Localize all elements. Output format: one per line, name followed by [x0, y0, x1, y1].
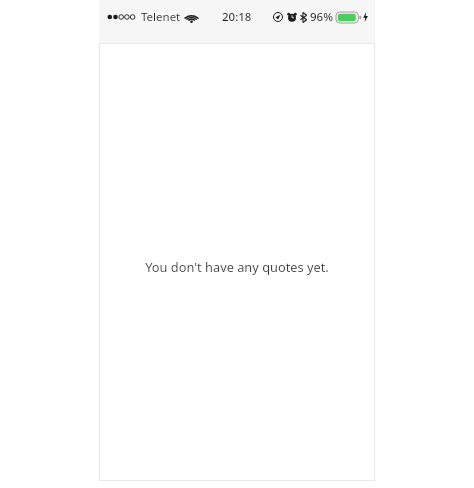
staticText: 96% [310, 9, 333, 25]
staticText: 20:18 [222, 9, 252, 25]
staticText: Telenet [141, 9, 181, 25]
button[interactable]: Empty quotes message [133, 254, 341, 279]
staticText: You don't have any quotes yet. [145, 258, 329, 275]
